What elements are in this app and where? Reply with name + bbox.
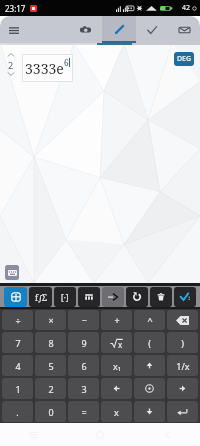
button[interactable] — [167, 378, 198, 399]
staticText: 1/x — [176, 360, 190, 372]
button[interactable]: 1 — [2, 378, 33, 399]
staticText: ( — [148, 337, 151, 349]
button[interactable]: arrow — [102, 287, 124, 307]
button[interactable]: x₁ — [101, 355, 132, 376]
button[interactable]: Edit — [102, 16, 136, 43]
button[interactable]: + — [101, 310, 132, 330]
button[interactable]: check — [174, 287, 196, 307]
staticText: 9 — [81, 337, 87, 349]
staticText: 3333e — [25, 59, 64, 78]
button[interactable] — [134, 378, 165, 399]
staticText: 6 — [81, 360, 87, 372]
staticText: 3 — [81, 383, 87, 395]
button[interactable]: Mail — [168, 16, 200, 43]
button[interactable]: Done — [136, 16, 168, 43]
staticText: 8 — [48, 337, 54, 349]
staticText: . — [16, 406, 19, 418]
button[interactable]: . — [2, 401, 33, 422]
staticText: 2 — [48, 383, 54, 395]
staticText: f∫Σ — [35, 292, 47, 303]
staticText: x — [114, 406, 119, 418]
button[interactable]: brk — [54, 287, 76, 307]
staticText: ÷ — [15, 314, 21, 326]
button[interactable] — [167, 310, 198, 330]
button[interactable]: 5 — [35, 355, 66, 376]
staticText: − — [81, 314, 87, 326]
button[interactable]: 2 — [35, 378, 66, 399]
staticText: 6 — [64, 57, 69, 68]
button[interactable] — [134, 355, 165, 376]
button[interactable]: tbl — [78, 287, 100, 307]
staticText: 7 — [15, 337, 21, 349]
staticText: x₁ — [113, 360, 121, 372]
button[interactable] — [101, 378, 132, 399]
button[interactable]: grid — [4, 287, 27, 307]
button[interactable]: 8 — [35, 332, 66, 353]
staticText: = — [81, 406, 87, 418]
staticText: ^ — [147, 314, 153, 326]
staticText: 4 — [15, 360, 21, 372]
button[interactable]: Toggle keyboard — [5, 265, 19, 280]
button[interactable]: 6 — [68, 355, 99, 376]
button[interactable]: × — [35, 310, 66, 330]
button[interactable]: undo — [126, 287, 148, 307]
staticText: + — [114, 314, 120, 326]
button[interactable] — [134, 401, 165, 422]
staticText: 42 — [182, 3, 191, 13]
staticText: 23:17 — [5, 3, 26, 14]
button[interactable]: Menu — [0, 16, 28, 43]
button[interactable]: 1/x — [167, 355, 198, 376]
button[interactable]: 3 — [68, 378, 99, 399]
button[interactable]: ÷ — [2, 310, 33, 330]
button[interactable]: ^ — [134, 310, 165, 330]
staticText: 1 — [15, 383, 21, 395]
button[interactable]: 0 — [35, 401, 66, 422]
button[interactable]: 4 — [2, 355, 33, 376]
button[interactable]: 7 — [2, 332, 33, 353]
staticText: 0 — [48, 406, 54, 418]
button[interactable]: DEG — [174, 52, 194, 66]
button[interactable]: x — [101, 401, 132, 422]
button[interactable]: x — [101, 332, 132, 353]
button[interactable]: − — [68, 310, 99, 330]
button[interactable]: ( — [134, 332, 165, 353]
button[interactable]: Camera — [69, 16, 102, 43]
button[interactable]: = — [68, 401, 99, 422]
button[interactable] — [167, 401, 198, 422]
button[interactable]: trash — [150, 287, 172, 307]
button[interactable]: 9 — [68, 332, 99, 353]
staticText: x — [118, 339, 123, 350]
button[interactable]: 3333e — [22, 54, 73, 82]
staticText: 2 — [8, 59, 14, 71]
staticText: 5 — [48, 360, 54, 372]
staticText: DEG — [177, 54, 192, 64]
staticText: × — [48, 314, 54, 326]
staticText: [·] — [61, 292, 69, 303]
staticText: ) — [181, 337, 184, 349]
button[interactable]: fsig — [29, 287, 52, 307]
button[interactable]: ) — [167, 332, 198, 353]
